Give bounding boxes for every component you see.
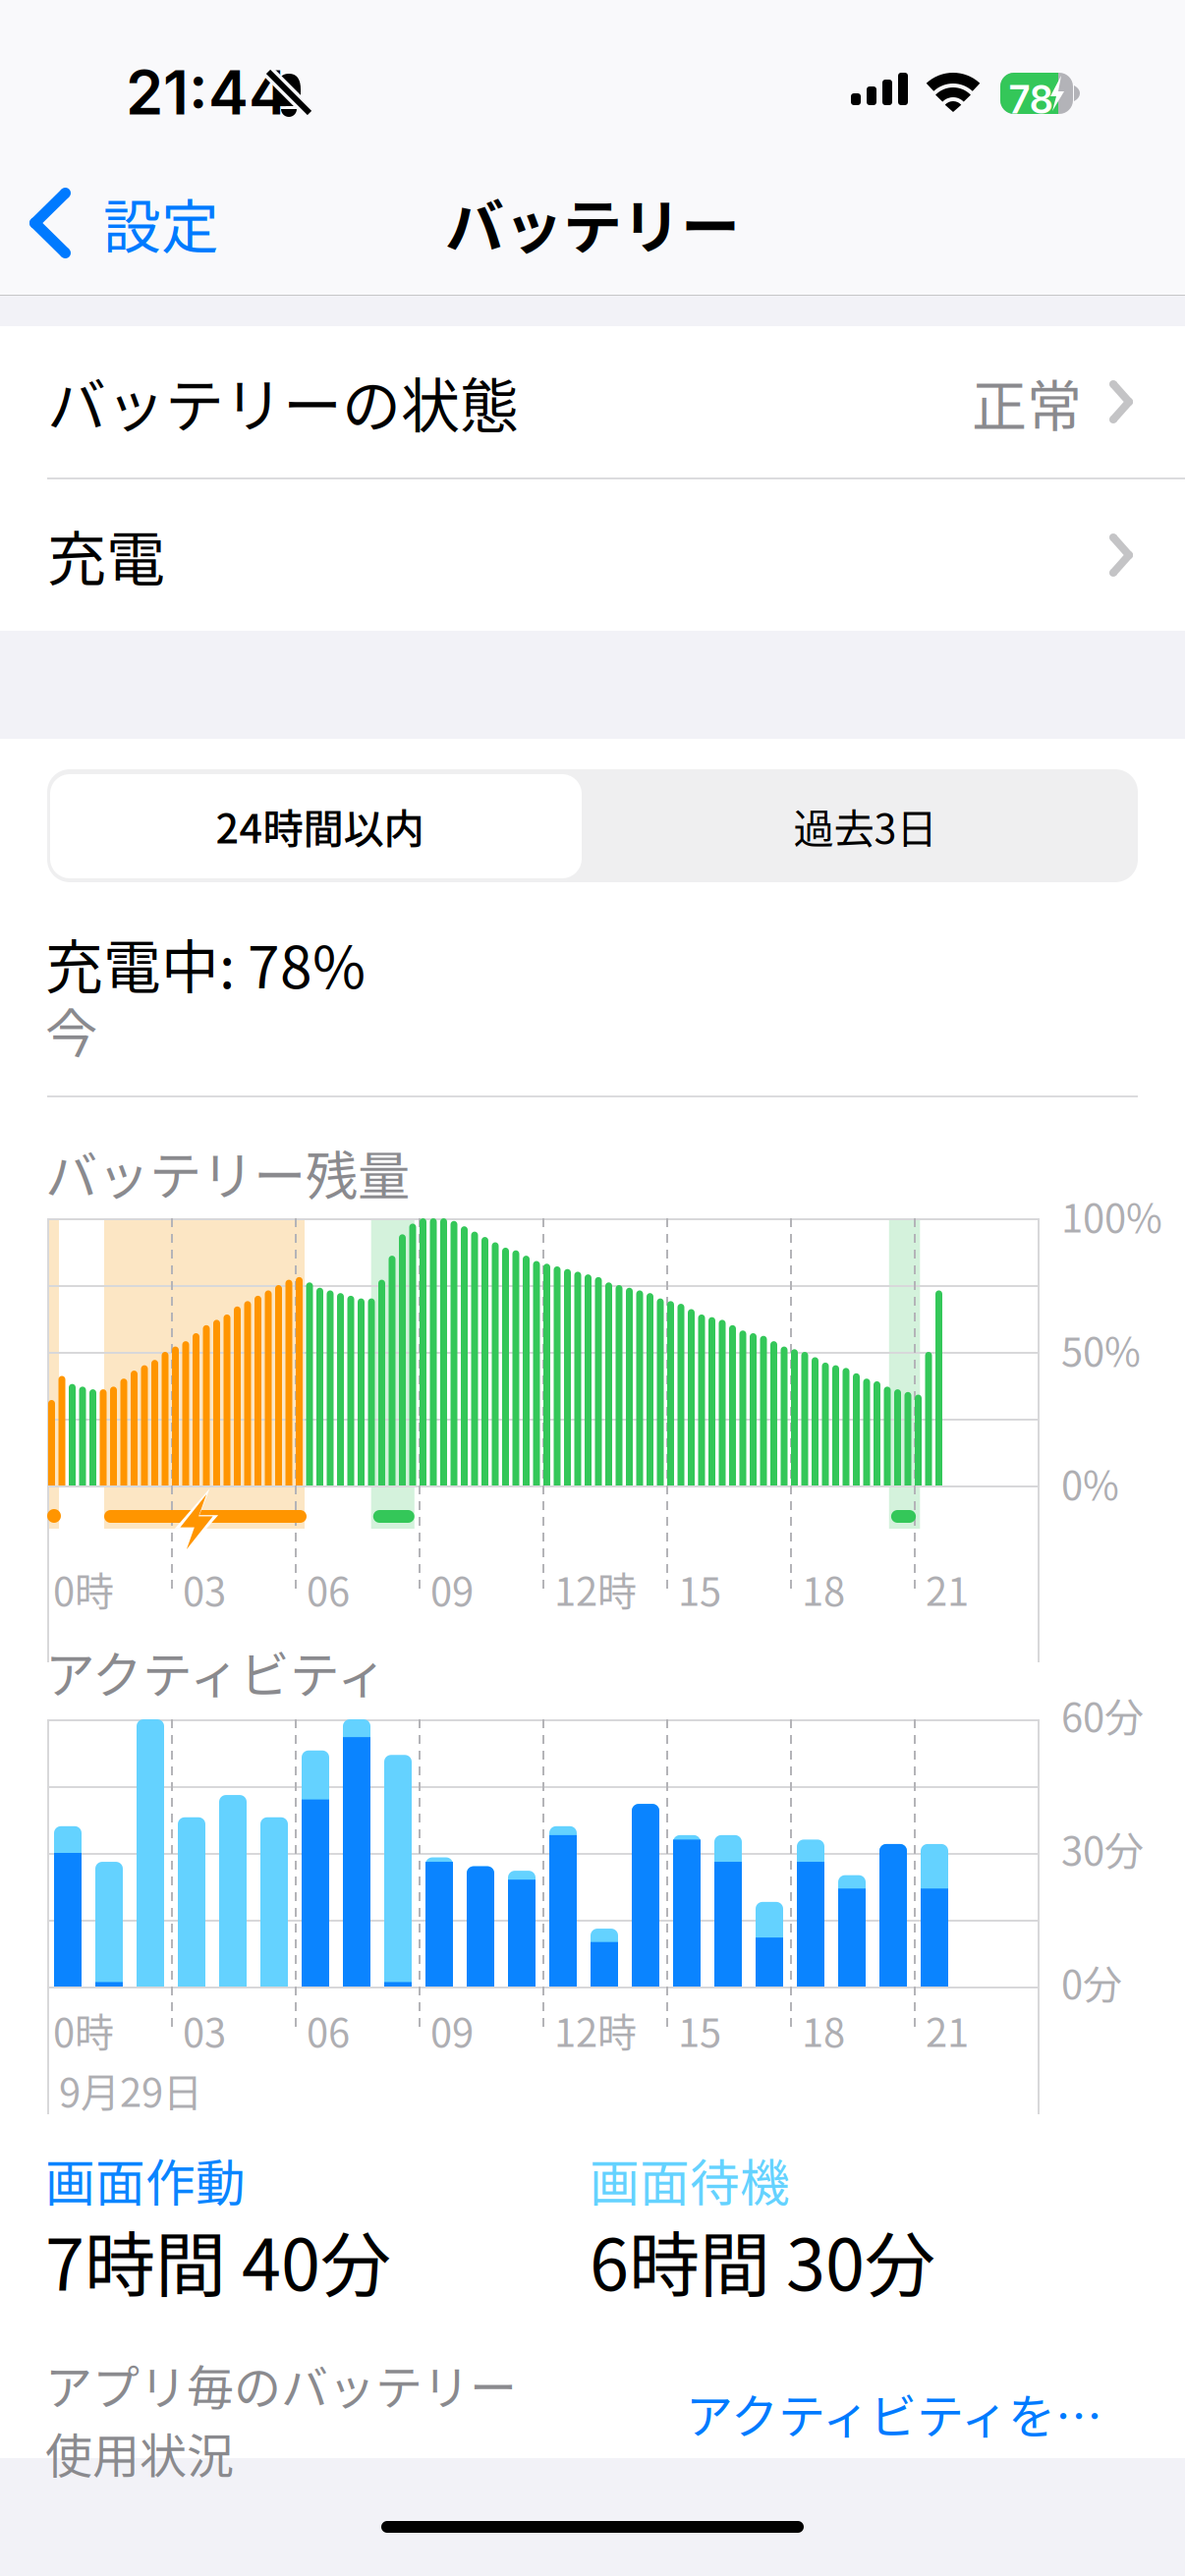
staticText: 6時間 30分: [590, 2209, 935, 2311]
staticText: 03: [183, 1560, 226, 1617]
staticText: 78: [1009, 77, 1053, 123]
staticText: 0分: [1061, 1953, 1122, 2010]
staticText: 12時: [554, 1560, 637, 1617]
staticText: バッテリー: [445, 180, 740, 266]
staticText: 0時: [53, 2001, 114, 2058]
staticText: 24時間以内: [216, 796, 424, 855]
staticText: 09: [430, 2001, 474, 2058]
staticText: 18: [802, 1560, 845, 1617]
staticText: 設定: [103, 181, 219, 265]
staticText: 15: [678, 1560, 721, 1617]
staticText: 画面待機: [590, 2144, 790, 2216]
staticText: 12時: [554, 2001, 637, 2058]
staticText: 0%: [1061, 1454, 1119, 1511]
staticText: 21: [926, 1560, 969, 1617]
button[interactable]: 設定: [0, 169, 243, 277]
staticText: 7時間 40分: [45, 2209, 391, 2311]
staticText: 充電中: 78%: [45, 922, 366, 1005]
staticText: 充電: [47, 512, 165, 598]
staticText: 06: [307, 1560, 350, 1617]
staticText: 06: [307, 2001, 350, 2058]
staticText: 30分: [1061, 1820, 1144, 1876]
button[interactable]: バッテリーの状態: [0, 326, 1185, 477]
staticText: 0時: [53, 1560, 114, 1617]
button[interactable]: 過去3日: [592, 769, 1138, 882]
button[interactable]: アクティビティを表示: [686, 2385, 1138, 2440]
staticText: 正常: [972, 362, 1082, 442]
staticText: 60分: [1061, 1686, 1144, 1743]
staticText: 03: [183, 2001, 226, 2058]
staticText: アクティビティを表示: [686, 2379, 1138, 2447]
staticText: アクティビティ: [45, 1636, 387, 1708]
staticText: 21:44: [126, 56, 289, 129]
staticText: 画面作動: [45, 2144, 246, 2216]
staticText: 9月29日: [59, 2061, 202, 2118]
button[interactable]: 24時間以内: [47, 769, 592, 882]
staticText: 21: [926, 2001, 969, 2058]
button[interactable]: 充電: [0, 479, 1185, 631]
staticText: アプリ毎のバッテリー 使用状況: [45, 2350, 517, 2487]
staticText: バッテリー残量: [45, 1135, 410, 1211]
staticText: 15: [678, 2001, 721, 2058]
staticText: バッテリーの状態: [47, 359, 519, 445]
staticText: 50%: [1061, 1320, 1141, 1377]
staticText: 18: [802, 2001, 845, 2058]
staticText: 過去3日: [793, 796, 937, 855]
staticText: 今: [45, 992, 97, 1068]
staticText: 100%: [1061, 1187, 1162, 1244]
staticText: 09: [430, 1560, 474, 1617]
